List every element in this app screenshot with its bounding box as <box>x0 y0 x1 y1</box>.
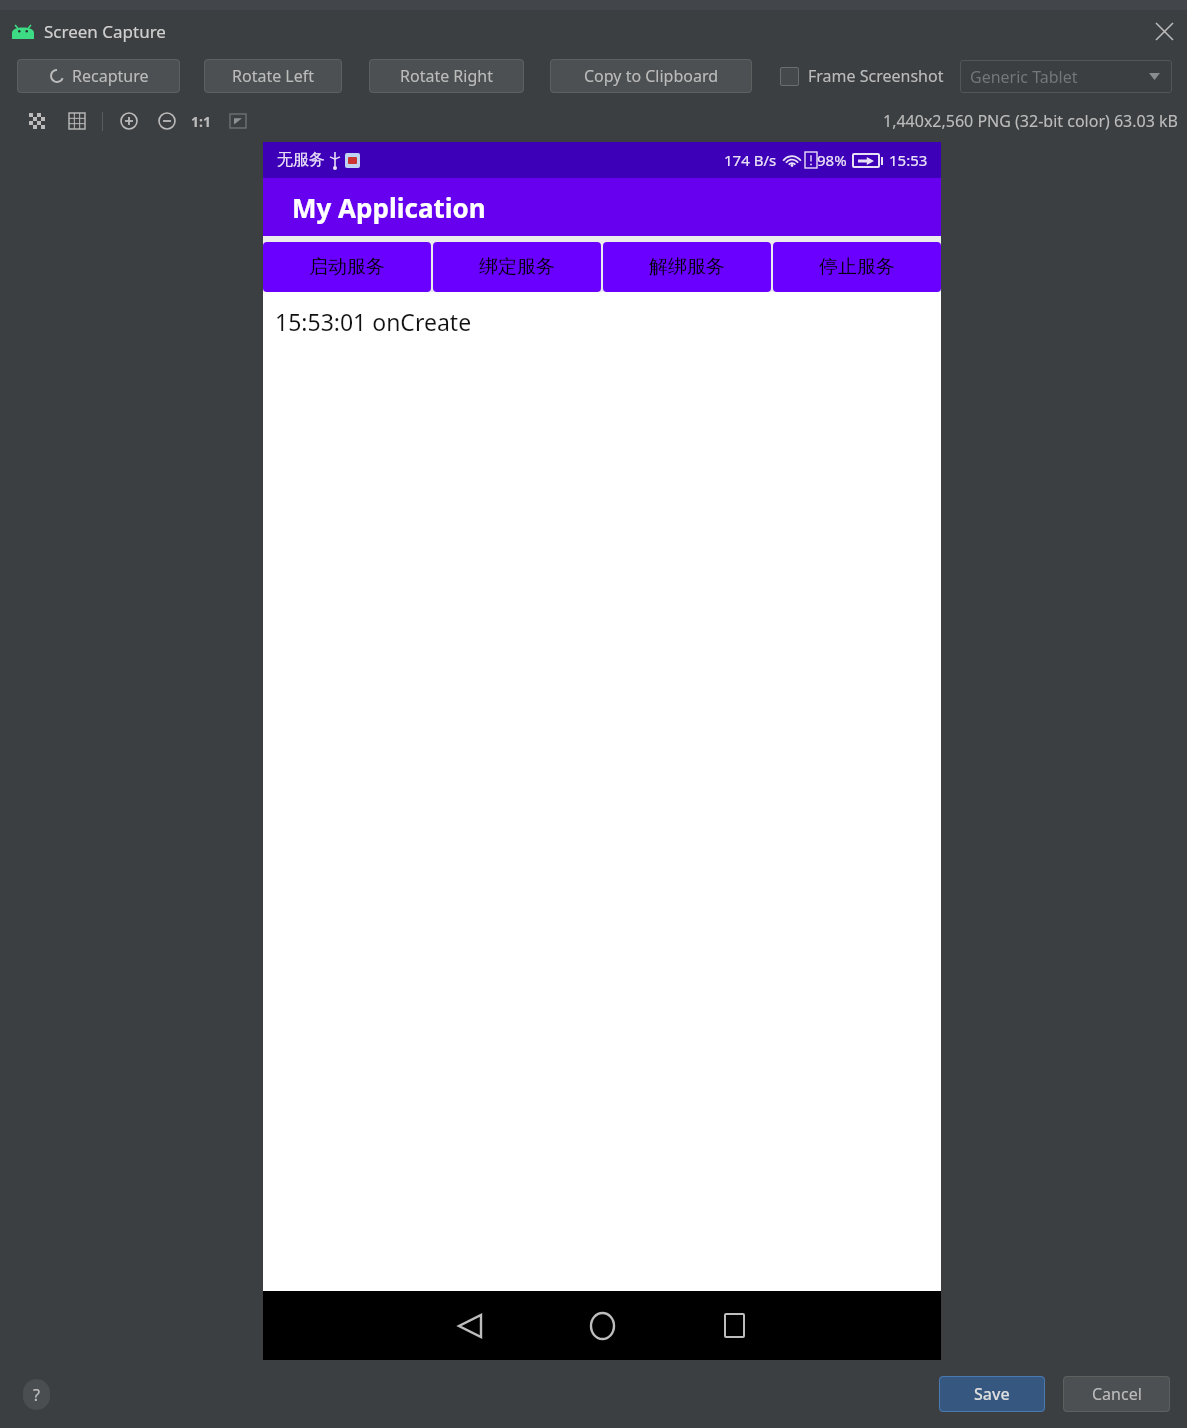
button[interactable]: Transparency <box>26 110 48 132</box>
button[interactable]: Recapture <box>17 59 180 93</box>
staticText: 无服务 <box>277 150 325 170</box>
staticText: 15:53:01 onCreate <box>275 306 472 337</box>
staticText: 15:53 <box>889 150 928 170</box>
staticText: Recapture <box>72 65 149 87</box>
staticText: 绑定服务 <box>479 255 555 279</box>
staticText: Frame Screenshot <box>808 65 944 87</box>
button[interactable]: Recents <box>686 1291 782 1360</box>
button[interactable]: Home <box>554 1291 650 1360</box>
button[interactable]: Rotate Left <box>204 59 342 93</box>
staticText: ? <box>33 1384 40 1406</box>
staticText: 1:1 <box>191 112 211 131</box>
staticText: Rotate Right <box>400 65 493 87</box>
button[interactable]: Back <box>422 1291 518 1360</box>
staticText: Cancel <box>1092 1383 1142 1405</box>
staticText: Rotate Left <box>232 65 315 87</box>
button[interactable]: 解绑服务 <box>603 242 771 292</box>
button[interactable]: Cancel <box>1063 1376 1170 1412</box>
staticText: 停止服务 <box>819 255 895 279</box>
button[interactable]: Frame Screenshot <box>780 65 944 87</box>
button[interactable]: Rotate Right <box>369 59 524 93</box>
button[interactable]: Close <box>1141 10 1187 52</box>
button[interactable]: Zoom out <box>155 109 179 133</box>
button[interactable]: Grid <box>66 110 88 132</box>
staticText: 启动服务 <box>309 255 385 279</box>
staticText: 解绑服务 <box>649 255 725 279</box>
staticText: 98% <box>817 150 847 170</box>
button[interactable]: 启动服务 <box>263 242 431 292</box>
button[interactable]: Zoom in <box>117 109 141 133</box>
button[interactable]: Fit to window <box>227 110 249 132</box>
staticText: 1,440x2,560 PNG (32-bit color) 63.03 kB <box>883 110 1178 132</box>
staticText: Copy to Clipboard <box>584 65 719 87</box>
staticText: Screen Capture <box>44 20 166 43</box>
button[interactable]: Generic Tablet <box>960 60 1172 93</box>
button[interactable]: 停止服务 <box>773 242 941 292</box>
button[interactable]: Save <box>939 1376 1045 1412</box>
staticText: Save <box>974 1383 1010 1405</box>
staticText: My Application <box>292 190 486 225</box>
staticText: 174 B/s <box>724 150 777 170</box>
button[interactable]: 绑定服务 <box>433 242 601 292</box>
staticText: Generic Tablet <box>970 66 1078 88</box>
button[interactable]: Copy to Clipboard <box>550 59 752 93</box>
button[interactable]: 1:1 <box>191 112 211 131</box>
button[interactable]: Help <box>22 1378 50 1410</box>
